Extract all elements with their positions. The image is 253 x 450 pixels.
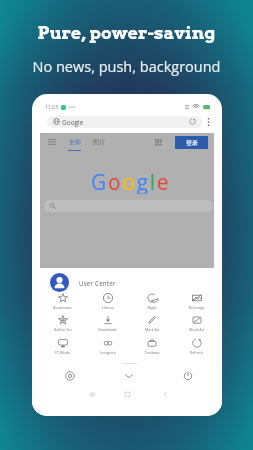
button[interactable]: Refresh	[174, 338, 219, 360]
button[interactable]: Recents	[80, 386, 104, 402]
staticText: 图片	[93, 138, 105, 146]
button[interactable]: User Center	[46, 268, 156, 296]
staticText: Toolbase	[144, 350, 160, 355]
staticText: Bookmarks	[53, 305, 72, 310]
button[interactable]: Back	[153, 386, 177, 402]
staticText: No news, push, background	[0, 57, 253, 77]
staticText: Mark Ad	[145, 327, 159, 332]
button[interactable]: Collapse	[115, 367, 143, 385]
button[interactable]: Downloads	[85, 315, 130, 337]
button[interactable]: No Image	[174, 293, 219, 315]
staticText: Pure, power-saving	[0, 22, 253, 43]
staticText: Refresh	[190, 350, 203, 355]
button[interactable]: Settings	[56, 367, 84, 385]
staticText: Google	[91, 168, 171, 194]
staticText: PC Mode	[55, 350, 70, 355]
button[interactable]: History	[85, 293, 130, 315]
staticText: User Center	[79, 279, 116, 287]
button[interactable]: Mark Ad	[129, 315, 174, 337]
staticText: 11:23	[45, 104, 58, 111]
button[interactable]: PC Mode	[40, 338, 85, 360]
staticText: No Image	[188, 305, 205, 310]
staticText: Incognito	[100, 350, 116, 355]
staticText: Add to Srn	[54, 327, 72, 332]
button[interactable]: Add to Srn	[40, 315, 85, 337]
staticText: 全部	[69, 138, 81, 146]
staticText: History	[102, 305, 114, 310]
button[interactable]: Toolbase	[129, 338, 174, 360]
button[interactable]: Bookmarks	[40, 293, 85, 315]
button[interactable]: Incognito	[85, 338, 130, 360]
button[interactable]: Night	[129, 293, 174, 315]
button[interactable]: Exit	[174, 367, 202, 385]
staticText: Block Ad	[189, 327, 204, 332]
staticText: 登录	[186, 139, 198, 147]
button[interactable]: Home	[115, 386, 139, 402]
button[interactable]: Block Ad	[174, 315, 219, 337]
staticText: Night	[147, 305, 157, 310]
staticText: Downloads	[98, 327, 117, 332]
staticText: Google	[62, 118, 84, 127]
